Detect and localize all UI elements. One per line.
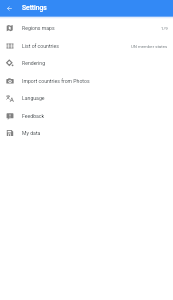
button[interactable]: List of countries	[0, 37, 173, 55]
button[interactable]: Import countries from Photos	[0, 72, 173, 90]
button[interactable]: My data	[0, 124, 173, 142]
button[interactable]: Language	[0, 89, 173, 107]
staticText: 1/9	[161, 26, 168, 31]
staticText: Import countries from Photos	[22, 78, 90, 84]
staticText: My data	[22, 130, 41, 136]
button[interactable]: Back	[1, 0, 17, 16]
staticText: Regions maps	[22, 25, 55, 31]
staticText: Feedback	[22, 113, 45, 119]
button[interactable]: Regions maps	[0, 19, 173, 37]
staticText: Language	[22, 95, 45, 101]
button[interactable]: Feedback	[0, 107, 173, 125]
staticText: Settings	[22, 4, 47, 12]
staticText: Rendering	[22, 60, 46, 66]
staticText: List of countries	[22, 43, 59, 49]
staticText: UN member states	[131, 44, 168, 49]
button[interactable]: Rendering	[0, 54, 173, 72]
